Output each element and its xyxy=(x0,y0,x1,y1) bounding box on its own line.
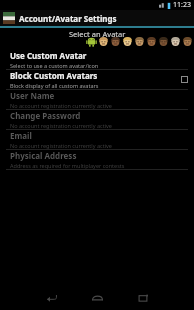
staticText: 11:23 xyxy=(173,0,191,10)
staticText: Select to use a custom avatar/icon xyxy=(10,62,99,69)
button[interactable]: Avatar option xyxy=(122,36,133,47)
button[interactable]: Physical Address xyxy=(0,150,194,169)
staticText: Account/Avatar Settings xyxy=(19,13,117,24)
staticText: No account registration currently active xyxy=(10,102,112,109)
button[interactable]: Avatar option xyxy=(98,36,109,47)
button[interactable]: Avatar option xyxy=(158,36,169,47)
button[interactable]: Block Custom Avatars xyxy=(0,70,194,89)
button[interactable]: Avatar option xyxy=(134,36,145,47)
staticText: Address as required for multiplayer cont… xyxy=(10,162,125,169)
staticText: Physical Address xyxy=(10,150,77,161)
button[interactable]: Change Password xyxy=(0,110,194,129)
button[interactable]: Avatar option xyxy=(182,36,193,47)
button[interactable]: User Name xyxy=(0,90,194,109)
button[interactable]: Back xyxy=(28,284,74,310)
button[interactable]: Avatar option xyxy=(146,36,157,47)
button[interactable]: Home xyxy=(74,284,120,310)
button[interactable]: Email xyxy=(0,130,194,149)
button[interactable]: Android avatar xyxy=(86,36,97,47)
button[interactable]: Account/Avatar Settings xyxy=(0,10,194,26)
staticText: No account registration currently active xyxy=(10,142,112,149)
staticText: Block Custom Avatars xyxy=(10,70,98,81)
staticText: Block display of all custom avatars xyxy=(10,82,99,89)
button[interactable]: Avatar option xyxy=(110,36,121,47)
staticText: Select an Avatar xyxy=(69,29,126,39)
staticText: Use Custom Avatar xyxy=(10,50,87,61)
staticText: Email xyxy=(10,130,32,141)
button[interactable]: Avatar option xyxy=(170,36,181,47)
button[interactable]: Recent apps xyxy=(120,284,166,310)
staticText: No account registration currently active xyxy=(10,122,112,129)
button[interactable]: Use Custom Avatar xyxy=(0,50,194,69)
button[interactable]: Block custom avatars checkbox xyxy=(181,76,188,83)
staticText: Change Password xyxy=(10,110,81,121)
staticText: User Name xyxy=(10,90,55,101)
